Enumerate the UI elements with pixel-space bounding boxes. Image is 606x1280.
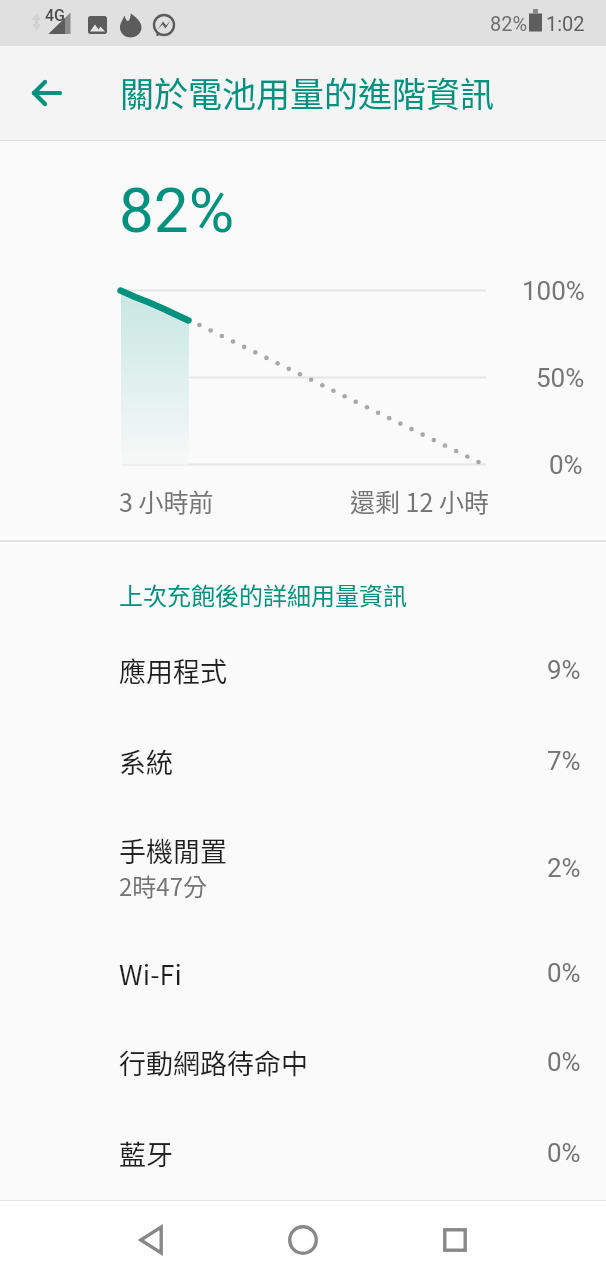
button[interactable]: Back xyxy=(117,1206,185,1274)
staticText: Wi-Fi xyxy=(119,954,182,993)
button[interactable]: 應用程式 xyxy=(0,625,606,715)
button[interactable]: Home xyxy=(269,1206,337,1274)
staticText: 3 小時前 xyxy=(119,483,214,519)
button[interactable]: Recent apps xyxy=(421,1206,489,1274)
button[interactable]: 手機閒置 xyxy=(0,823,606,913)
staticText: 應用程式 xyxy=(119,651,227,690)
staticText: 50% xyxy=(536,363,585,393)
staticText: 2時47分 xyxy=(119,868,207,903)
button[interactable]: Back xyxy=(7,53,87,133)
staticText: 100% xyxy=(522,276,585,306)
staticText: 82% xyxy=(490,12,528,35)
staticText: 0% xyxy=(547,958,581,988)
staticText: 關於電池用量的進階資訊 xyxy=(120,68,494,117)
button[interactable]: 藍牙 xyxy=(0,1108,606,1198)
staticText: 還剩 12 小時 xyxy=(350,483,489,519)
staticText: 4G xyxy=(45,6,65,25)
staticText: 9% xyxy=(547,655,581,685)
button[interactable]: Wi-Fi xyxy=(0,928,606,1018)
button[interactable]: 行動網路待命中 xyxy=(0,1017,606,1107)
staticText: 上次充飽後的詳細用量資訊 xyxy=(119,577,407,612)
staticText: 7% xyxy=(547,746,581,776)
staticText: 0% xyxy=(549,450,583,480)
staticText: 藍牙 xyxy=(119,1134,173,1173)
staticText: 2% xyxy=(547,853,581,883)
staticText: 82% xyxy=(119,174,235,247)
staticText: 手機閒置 xyxy=(119,831,227,870)
staticText: 0% xyxy=(547,1138,581,1168)
staticText: 行動網路待命中 xyxy=(119,1043,308,1082)
staticText: 0% xyxy=(547,1047,581,1077)
button[interactable]: 系統 xyxy=(0,716,606,806)
staticText: 1:02 xyxy=(546,12,585,35)
staticText: 系統 xyxy=(119,742,173,781)
